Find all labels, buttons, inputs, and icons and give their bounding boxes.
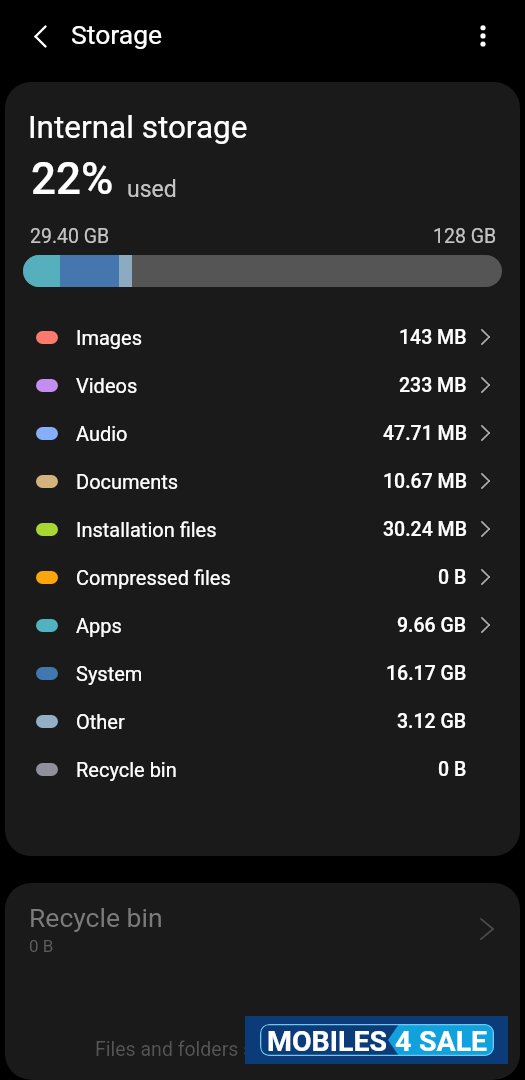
staticText: 4 [395,1025,412,1056]
staticText: Other [76,710,125,733]
button[interactable]: System [5,649,520,697]
staticText: Files and folders st [95,1038,260,1061]
staticText: 29.40 GB [30,225,110,248]
button[interactable]: Apps [5,601,520,649]
staticText: System [76,662,143,685]
staticText: 22% [31,153,114,205]
staticText: MOBILES [267,1025,388,1056]
staticText: 10.67 MB [383,470,467,493]
staticText: Images [76,326,143,349]
button[interactable]: Installation files [5,505,520,553]
staticText: Installation files [76,518,217,541]
staticText: 128 GB [433,225,497,248]
staticText: Recycle bin [76,758,177,781]
staticText: Recycle bin [29,902,163,933]
staticText: 47.71 MB [383,422,467,445]
button[interactable]: More options [462,15,504,57]
staticText: 0 B [438,758,467,781]
staticText: Compressed files [76,566,231,589]
button[interactable]: Videos [5,361,520,409]
staticText: used [127,176,177,203]
staticText: 9.66 GB [397,614,467,637]
staticText: Internal storage [28,109,248,146]
staticText: SALE [419,1025,488,1056]
staticText: 233 MB [399,374,467,397]
button[interactable]: Recycle bin [5,745,520,793]
staticText: 0 B [438,566,467,589]
button[interactable]: Back [21,16,61,56]
staticText: 30.24 MB [383,518,467,541]
button[interactable]: Other [5,697,520,745]
staticText: Apps [76,614,122,637]
button[interactable]: Images [5,313,520,361]
button[interactable]: Audio [5,409,520,457]
staticText: Documents [76,470,179,493]
staticText: Videos [76,374,138,397]
staticText: 143 MB [399,326,467,349]
staticText: 0 B [29,936,54,956]
button[interactable]: Recycle bin [5,883,520,975]
staticText: 3.12 GB [397,710,467,733]
staticText: Storage [71,19,163,50]
button[interactable]: Documents [5,457,520,505]
button[interactable]: Compressed files [5,553,520,601]
staticText: 16.17 GB [386,662,467,685]
staticText: Audio [76,422,128,445]
